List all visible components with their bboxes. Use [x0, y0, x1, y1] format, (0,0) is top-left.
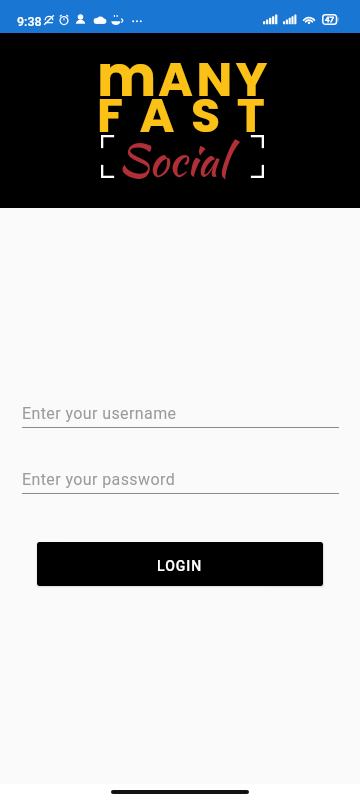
staticText: LOGIN — [157, 558, 203, 574]
staticText: 9:38 — [17, 14, 42, 29]
staticText: Enter your password — [22, 470, 176, 489]
staticText: Enter your username — [22, 404, 177, 423]
staticText: m — [97, 37, 157, 115]
staticText: 47 — [325, 15, 335, 24]
staticText: Social — [118, 128, 228, 192]
staticText: FAST — [97, 82, 282, 148]
staticText: ANY — [158, 46, 271, 112]
button[interactable]: LOGIN — [37, 542, 323, 586]
